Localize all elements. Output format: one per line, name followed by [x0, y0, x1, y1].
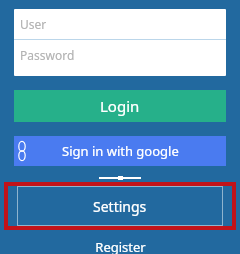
staticText: Password [20, 47, 75, 63]
staticText: User [20, 16, 47, 32]
button[interactable]: Settings [17, 186, 223, 226]
staticText: Sign in with google [62, 142, 179, 160]
other: Google [17, 140, 27, 162]
button[interactable]: Login [14, 90, 226, 122]
staticText: Settings [93, 197, 147, 216]
button[interactable]: Register [0, 238, 240, 254]
button[interactable]: User [14, 9, 226, 39]
staticText: Login [100, 96, 140, 116]
button[interactable]: Sign in with google [14, 136, 226, 166]
staticText: Register [95, 238, 146, 254]
button[interactable]: Password [14, 40, 226, 70]
